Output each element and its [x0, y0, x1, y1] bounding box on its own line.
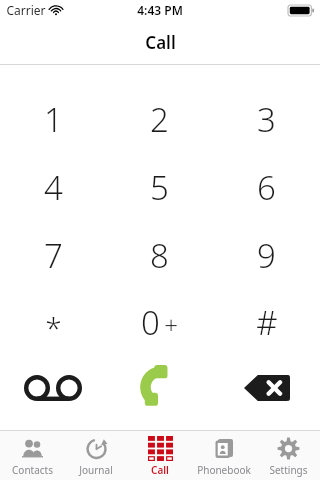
staticText: Call	[151, 463, 169, 477]
button[interactable]: Call	[106, 362, 213, 414]
staticText: 1	[44, 97, 63, 142]
staticText: Journal	[79, 463, 113, 477]
button[interactable]: 9	[213, 227, 320, 283]
staticText: 5	[150, 165, 169, 210]
staticText: Carrier	[6, 2, 46, 18]
button[interactable]: 6	[213, 159, 320, 215]
button[interactable]: 7	[0, 227, 106, 283]
button[interactable]: 8	[106, 227, 213, 283]
staticText: Settings	[269, 463, 308, 477]
staticText: #	[256, 300, 278, 345]
button[interactable]: 3	[213, 91, 320, 147]
staticText: 0	[141, 300, 160, 345]
staticText: *	[45, 307, 62, 348]
button[interactable]: Settings	[256, 431, 320, 480]
button[interactable]: Phonebook	[192, 431, 256, 480]
staticText: 9	[257, 233, 276, 278]
staticText: 6	[257, 165, 276, 210]
button[interactable]: *	[0, 294, 106, 350]
button[interactable]: 4	[0, 159, 106, 215]
button[interactable]: Journal	[64, 431, 128, 480]
button[interactable]: 0	[106, 294, 213, 350]
staticText: 2	[150, 97, 169, 142]
button[interactable]: 5	[106, 159, 213, 215]
staticText: 3	[257, 97, 276, 142]
button[interactable]: Voicemail	[0, 362, 106, 414]
staticText: 8	[150, 233, 169, 278]
staticText: Call	[145, 31, 176, 54]
staticText: +	[164, 308, 178, 341]
staticText: Phonebook	[197, 463, 251, 477]
button[interactable]: Contacts	[0, 431, 64, 480]
staticText: Contacts	[12, 463, 53, 477]
staticText: 4:43 PM	[137, 2, 183, 18]
button[interactable]: Backspace	[213, 362, 320, 414]
button[interactable]: 1	[0, 91, 106, 147]
button[interactable]: Call	[128, 431, 192, 480]
button[interactable]: #	[213, 294, 320, 350]
button[interactable]: 2	[106, 91, 213, 147]
staticText: 4	[44, 165, 63, 210]
staticText: 7	[44, 233, 63, 278]
